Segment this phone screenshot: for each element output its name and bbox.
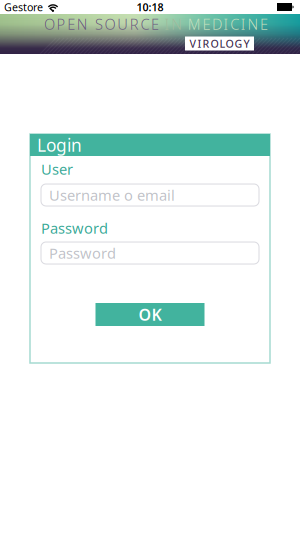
staticText: Gestore [4, 0, 43, 14]
staticText: VIROLOGY [189, 36, 249, 51]
staticText: MEDICINE [188, 14, 268, 34]
secureTextField[interactable]: Password [41, 242, 259, 264]
staticText: Username o email [49, 185, 175, 205]
button[interactable]: OK [95, 303, 204, 326]
staticText: OK [138, 304, 161, 325]
staticText: 10:18 [136, 0, 163, 14]
staticText: Password [49, 243, 116, 263]
staticText: IN [165, 14, 188, 34]
staticText: OPEN SOURCE [44, 14, 165, 34]
staticText: Login [37, 133, 82, 156]
textField[interactable]: Username o email [41, 184, 259, 206]
staticText: Password [41, 218, 108, 238]
staticText: User [41, 159, 73, 179]
